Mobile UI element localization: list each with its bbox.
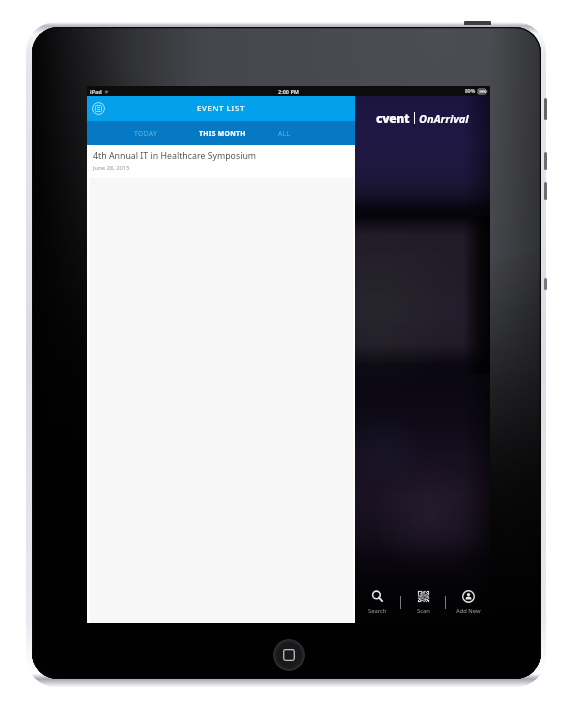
staticText: 89% xyxy=(465,88,476,95)
staticText: Add New xyxy=(456,607,481,615)
staticText: iPad xyxy=(90,88,102,95)
staticText: EVENT LIST xyxy=(197,103,245,114)
staticText: THIS MONTH xyxy=(199,129,246,138)
staticText: Search xyxy=(368,607,387,615)
button[interactable]: 4th Annual IT in Healthcare Symposium xyxy=(87,145,355,178)
button[interactable]: Menu xyxy=(90,100,107,117)
button[interactable]: ALL xyxy=(271,121,298,145)
staticText: 4th Annual IT in Healthcare Symposium xyxy=(93,150,257,162)
button[interactable]: Add New xyxy=(446,581,490,623)
staticText: OnArrival xyxy=(419,111,469,126)
button[interactable]: Search xyxy=(355,581,400,623)
button[interactable]: Scan xyxy=(401,581,445,623)
staticText: cvent xyxy=(376,110,410,126)
button[interactable]: TODAY xyxy=(127,121,165,145)
staticText: TODAY xyxy=(134,129,158,138)
staticText: 2:00 PM xyxy=(278,88,300,95)
staticText: Scan xyxy=(417,607,430,615)
staticText: June 28, 2015 xyxy=(93,164,130,172)
staticText: ALL xyxy=(278,129,291,138)
button[interactable]: THIS MONTH xyxy=(192,121,253,145)
button[interactable]: Home xyxy=(273,639,305,671)
